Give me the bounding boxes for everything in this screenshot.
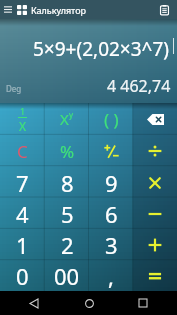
button[interactable]: 0	[0, 260, 45, 291]
button[interactable]: 5	[45, 198, 89, 229]
staticText: 5	[61, 199, 74, 229]
button[interactable]: 6	[89, 198, 133, 229]
button[interactable]: Percent	[45, 135, 89, 167]
button[interactable]: Equals	[133, 260, 177, 291]
staticText: X	[60, 109, 69, 129]
staticText: 9	[105, 168, 118, 198]
staticText: %	[60, 140, 75, 163]
button[interactable]: Home	[69, 291, 109, 315]
staticText: ( )	[104, 108, 119, 131]
staticText: Deg	[6, 83, 22, 94]
button[interactable]: Plus minus	[89, 135, 133, 167]
staticText: ,	[108, 261, 114, 291]
staticText: y	[69, 109, 74, 120]
button[interactable]: 4	[0, 198, 45, 229]
staticText: 4 462,74	[107, 75, 171, 97]
button[interactable]: Plus	[133, 229, 177, 260]
staticText: 1	[16, 230, 29, 260]
button[interactable]: Backspace	[133, 103, 177, 135]
button[interactable]: History	[153, 0, 175, 19]
button[interactable]: Minus	[133, 198, 177, 229]
staticText: 6	[105, 199, 118, 229]
staticText: C	[17, 140, 28, 163]
button[interactable]: ,	[89, 260, 133, 291]
button[interactable]: Back	[14, 291, 54, 315]
staticText: 8	[61, 168, 74, 198]
staticText: 00	[54, 261, 80, 291]
button[interactable]: 00	[45, 260, 89, 291]
button[interactable]: Divide	[133, 135, 177, 167]
button[interactable]: Multiply	[133, 167, 177, 198]
button[interactable]: 3	[89, 229, 133, 260]
staticText: 4	[16, 199, 29, 229]
button[interactable]: 8	[45, 167, 89, 198]
button[interactable]: Power	[45, 103, 89, 135]
staticText: Калькулятор	[31, 4, 87, 16]
button[interactable]: 1	[0, 229, 45, 260]
staticText: 0	[16, 261, 29, 291]
button[interactable]: Parentheses	[89, 103, 133, 135]
button[interactable]: Menu	[2, 0, 14, 19]
button[interactable]: Clear	[0, 135, 45, 167]
button[interactable]: 7	[0, 167, 45, 198]
staticText: X	[19, 118, 27, 134]
staticText: 7	[16, 168, 29, 198]
button[interactable]: 2	[45, 229, 89, 260]
staticText: 3	[105, 230, 118, 260]
staticText: 2	[61, 230, 74, 260]
button[interactable]: Recents	[123, 291, 163, 315]
button[interactable]: 9	[89, 167, 133, 198]
button[interactable]: Reciprocal	[0, 103, 45, 135]
staticText: 5×9+(2,02×3^7)	[33, 36, 170, 62]
staticText: 1	[20, 105, 26, 117]
